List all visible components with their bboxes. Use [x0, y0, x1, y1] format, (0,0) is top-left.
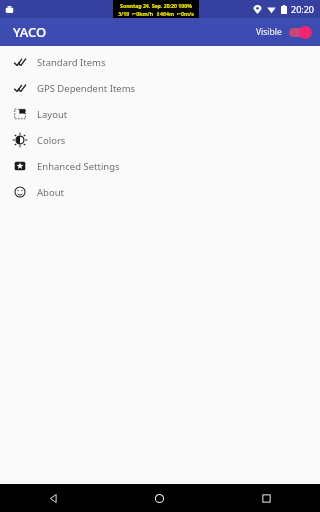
button[interactable]: About — [0, 179, 320, 205]
staticText: Visible — [256, 26, 282, 38]
button[interactable]: Enhanced Settings — [0, 153, 320, 179]
staticText: YACO — [13, 23, 47, 41]
button[interactable]: Colors — [0, 127, 320, 153]
button[interactable]: Visible — [256, 25, 312, 39]
button[interactable]: GPS Dependent Items — [0, 75, 320, 101]
staticText: GPS Dependent Items — [37, 82, 136, 95]
button[interactable]: Home — [106, 484, 213, 512]
staticText: Standard Items — [37, 56, 106, 69]
button[interactable]: Layout — [0, 101, 320, 127]
button[interactable]: Back — [0, 484, 106, 512]
staticText: 20:20 — [291, 3, 315, 15]
staticText: About — [37, 186, 64, 199]
staticText: Sonntag 24. Sep. 20:20 100% — [120, 2, 192, 9]
staticText: Layout — [37, 108, 68, 121]
button[interactable]: Recent apps — [213, 484, 320, 512]
staticText: 3/19 ⌐0km/h ↕464m ⌐0m/s — [118, 10, 194, 17]
staticText: Enhanced Settings — [37, 160, 120, 173]
staticText: Colors — [37, 134, 66, 147]
button[interactable]: Standard Items — [0, 49, 320, 75]
